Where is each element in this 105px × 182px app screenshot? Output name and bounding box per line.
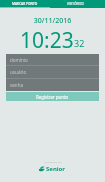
staticText: Senior [46,165,66,173]
button[interactable]: Registrar ponto [6,92,99,101]
button[interactable]: HISTÓRICO [50,0,105,8]
staticText: HISTÓRICO [67,2,85,6]
staticText: 32 [74,37,85,49]
staticText: 30/11/2016 [0,16,105,26]
staticText: usuário [10,69,27,75]
staticText: Registrar ponto [36,94,69,100]
staticText: 10:23 [20,26,74,55]
button[interactable]: senha [6,79,99,91]
button[interactable]: usuário [6,66,99,78]
staticText: MARCAR PONTO [12,2,38,6]
staticText: senha [10,82,24,88]
button[interactable]: domínio [6,54,99,65]
staticText: Desenvolvido por [44,161,62,164]
staticText: domínio [10,57,28,63]
button[interactable]: MARCAR PONTO [0,0,50,8]
